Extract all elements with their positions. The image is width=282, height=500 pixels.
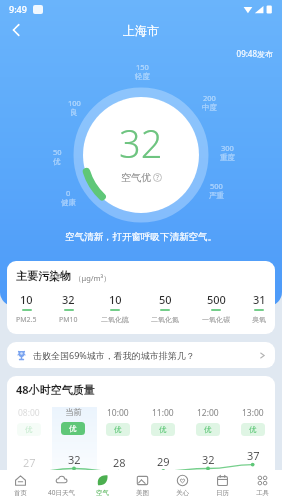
staticText: 当前 <box>65 407 82 418</box>
staticText: 主要污染物 <box>16 269 71 283</box>
staticText: 32 <box>68 452 81 467</box>
staticText: 优 <box>204 425 212 434</box>
staticText: 优 <box>53 157 61 166</box>
button[interactable]: Back <box>5 19 27 41</box>
staticText: 健康 <box>61 198 76 207</box>
staticText: 10:00 <box>107 407 129 419</box>
staticText: 28 <box>113 455 126 470</box>
staticText: 日历 <box>216 489 229 497</box>
staticText: 12:00 <box>197 407 219 419</box>
staticText: ? <box>156 173 159 182</box>
staticText: 31 <box>253 292 266 307</box>
staticText: 臭氧 <box>252 315 266 324</box>
staticText: 37 <box>247 448 260 463</box>
staticText: 严重 <box>209 191 224 200</box>
staticText: 10 <box>20 292 33 307</box>
staticText: 工具 <box>256 489 269 497</box>
staticText: 空气清新，打开窗呼吸下清新空气。 <box>0 231 282 243</box>
staticText: 二氧化氮 <box>151 315 179 324</box>
staticText: 300 <box>221 143 234 153</box>
staticText: 一氧化碳 <box>202 315 230 324</box>
button[interactable]: 12:00 <box>185 407 230 477</box>
staticText: 29 <box>157 454 170 469</box>
button[interactable]: 11:00 <box>140 407 185 477</box>
staticText: 10 <box>109 292 122 307</box>
staticText: 中度 <box>202 103 217 112</box>
staticText: 150 <box>136 62 149 72</box>
staticText: 50 <box>53 147 62 157</box>
staticText: 200 <box>203 93 216 103</box>
staticText: 11:00 <box>152 407 174 419</box>
staticText: （μg/m³） <box>74 273 111 283</box>
button[interactable]: 首页 <box>0 470 41 500</box>
staticText: 40日天气 <box>48 488 75 497</box>
button[interactable]: 13:00 <box>230 407 275 477</box>
staticText: 击败全国69%城市，看我的城市排第几？ <box>33 349 195 361</box>
button[interactable]: 40日天气 <box>41 470 82 500</box>
staticText: 优 <box>25 425 33 434</box>
staticText: 优 <box>159 425 167 434</box>
staticText: 优 <box>69 424 77 433</box>
staticText: PM10 <box>59 315 78 325</box>
button[interactable]: 击败全国69%城市，看我的城市排第几？ <box>7 342 275 368</box>
button[interactable]: 当前 <box>51 407 95 477</box>
staticText: 13:00 <box>242 407 264 419</box>
staticText: 上海市 <box>123 23 159 38</box>
staticText: 空气 <box>96 489 109 497</box>
staticText: 08:00 <box>18 407 40 419</box>
staticText: 27 <box>23 455 36 470</box>
staticText: 空气优 <box>121 171 151 184</box>
button[interactable]: Air quality info <box>153 173 162 182</box>
staticText: 优 <box>114 425 122 434</box>
button[interactable]: 空气 <box>82 470 122 500</box>
staticText: 关心 <box>176 489 189 497</box>
staticText: 优 <box>249 425 257 434</box>
button[interactable]: 08:00 <box>7 407 51 477</box>
staticText: 500 <box>210 181 223 191</box>
button[interactable]: 日历 <box>202 470 242 500</box>
staticText: 48小时空气质量 <box>16 382 95 397</box>
staticText: 9:49 <box>9 3 27 15</box>
staticText: 轻度 <box>135 72 150 81</box>
staticText: 二氧化硫 <box>101 315 129 324</box>
button[interactable]: 10:00 <box>95 407 140 477</box>
staticText: 09:48发布 <box>0 48 273 59</box>
button[interactable]: 美图 <box>122 470 162 500</box>
button[interactable]: 工具 <box>242 470 282 500</box>
staticText: 美图 <box>136 489 149 497</box>
staticText: 32 <box>202 452 215 467</box>
staticText: 100 <box>68 98 81 108</box>
button[interactable]: 关心 <box>162 470 202 500</box>
staticText: 32 <box>119 117 163 169</box>
staticText: 500 <box>207 292 226 307</box>
staticText: 良 <box>70 108 78 117</box>
staticText: 50 <box>159 292 172 307</box>
staticText: 首页 <box>14 489 27 497</box>
staticText: 重度 <box>220 153 235 162</box>
staticText: 0 <box>66 188 71 198</box>
staticText: PM2.5 <box>16 315 37 325</box>
staticText: 32 <box>62 292 75 307</box>
